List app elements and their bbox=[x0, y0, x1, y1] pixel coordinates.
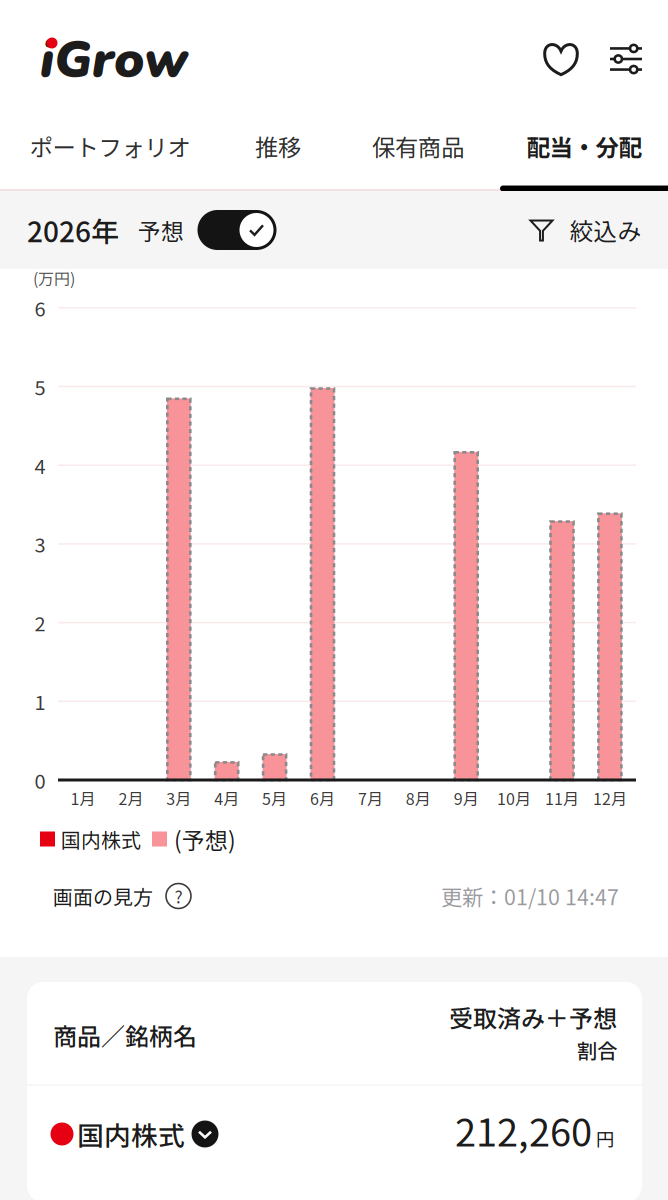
staticText: 3 bbox=[34, 529, 45, 558]
button[interactable]: 設定 bbox=[596, 33, 656, 85]
staticText: 保有商品 bbox=[372, 129, 464, 163]
staticText: 国内株式 bbox=[77, 1115, 185, 1153]
staticText: 2026年 bbox=[27, 210, 119, 250]
button[interactable]: 配当・分配 bbox=[512, 110, 655, 182]
staticText: 絞込み bbox=[569, 213, 641, 247]
staticText: 3月 bbox=[166, 786, 191, 810]
staticText: 予想 bbox=[138, 214, 184, 246]
staticText: 割合 bbox=[577, 1035, 617, 1064]
staticText: 5 bbox=[34, 372, 45, 401]
staticText: ? bbox=[174, 883, 182, 909]
staticText: 国内株式 bbox=[61, 824, 141, 853]
staticText: 9月 bbox=[454, 786, 479, 810]
staticText: ポートフォリオ bbox=[29, 129, 190, 163]
staticText: 1 bbox=[34, 687, 45, 716]
staticText: 12月 bbox=[593, 786, 627, 810]
staticText: 212,260 bbox=[455, 1102, 592, 1157]
staticText: 1月 bbox=[70, 786, 95, 810]
staticText: 2 bbox=[34, 608, 45, 637]
staticText: 8月 bbox=[406, 786, 431, 810]
button[interactable]: ポートフォリオ bbox=[15, 110, 204, 182]
staticText: 2月 bbox=[118, 786, 143, 810]
staticText: 4 bbox=[34, 451, 45, 480]
staticText: 配当・分配 bbox=[526, 129, 641, 163]
staticText: 受取済み＋予想 bbox=[449, 1000, 617, 1034]
staticText: 5月 bbox=[262, 786, 287, 810]
staticText: 7月 bbox=[358, 786, 383, 810]
button[interactable]: お気に入り bbox=[530, 29, 592, 89]
staticText: 更新：01/10 14:47 bbox=[441, 881, 619, 911]
staticText: 0 bbox=[34, 765, 45, 794]
staticText: 11月 bbox=[545, 786, 579, 810]
button[interactable]: 画面の見方 bbox=[53, 871, 191, 920]
button[interactable]: 予想を表示 bbox=[197, 210, 276, 250]
staticText: 商品／銘柄名 bbox=[53, 1018, 197, 1052]
button[interactable]: 国内株式 bbox=[27, 1085, 642, 1195]
button[interactable]: 保有商品 bbox=[358, 110, 478, 182]
staticText: 推移 bbox=[255, 129, 301, 163]
staticText: iGrow bbox=[40, 25, 188, 94]
staticText: 4月 bbox=[214, 786, 239, 810]
button[interactable]: 絞込み bbox=[530, 201, 641, 259]
button[interactable]: 推移 bbox=[241, 110, 315, 182]
staticText: 10月 bbox=[497, 786, 531, 810]
staticText: 6月 bbox=[310, 786, 335, 810]
staticText: 6 bbox=[34, 293, 45, 322]
staticText: 画面の見方 bbox=[53, 881, 153, 910]
staticText: (万円) bbox=[33, 266, 75, 290]
staticText: 円 bbox=[596, 1125, 615, 1152]
staticText: (予想) bbox=[174, 823, 236, 855]
